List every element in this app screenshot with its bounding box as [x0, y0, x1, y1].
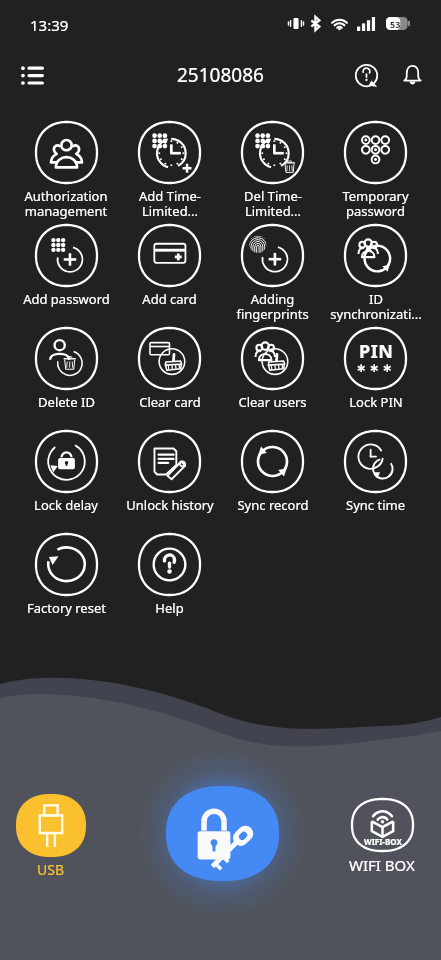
- button[interactable]: Help: [118, 534, 221, 637]
- button[interactable]: Factory reset: [14, 534, 118, 637]
- staticText: Add password: [23, 290, 110, 308]
- button[interactable]: ID synchronizati...: [324, 225, 427, 328]
- staticText: USB: [37, 860, 65, 879]
- button[interactable]: Authorization management: [14, 122, 118, 225]
- button[interactable]: Clear users: [221, 328, 324, 431]
- staticText: Add card: [142, 290, 197, 308]
- button[interactable]: Unlock history: [118, 431, 221, 534]
- button[interactable]: USB: [16, 794, 86, 879]
- staticText: Del Time- Limited...: [244, 187, 302, 220]
- staticText: Sync record: [237, 496, 309, 514]
- staticText: Clear card: [139, 393, 201, 411]
- staticText: Temporary password: [342, 187, 409, 220]
- staticText: 53: [390, 18, 401, 30]
- button[interactable]: PIN: [324, 328, 427, 431]
- staticText: 25108086: [177, 62, 264, 88]
- staticText: Adding fingerprints: [236, 290, 309, 323]
- staticText: Sync time: [346, 496, 405, 514]
- button[interactable]: Notifications: [389, 52, 435, 98]
- staticText: ∗∗∗: [356, 361, 396, 375]
- staticText: Authorization management: [24, 187, 108, 220]
- button[interactable]: WIFI-BOX: [349, 799, 415, 875]
- button[interactable]: Add Time- Limited...: [118, 122, 221, 225]
- button[interactable]: Clear card: [118, 328, 221, 431]
- button[interactable]: Add card: [118, 225, 221, 328]
- button[interactable]: Del Time- Limited...: [221, 122, 324, 225]
- staticText: Help: [155, 599, 184, 617]
- staticText: Clear users: [238, 393, 307, 411]
- button[interactable]: Unlock: [166, 786, 279, 881]
- button[interactable]: Lock delay: [14, 431, 118, 534]
- button[interactable]: Help: [343, 52, 389, 98]
- button[interactable]: Temporary password: [324, 122, 427, 225]
- staticText: Unlock history: [126, 496, 214, 514]
- staticText: Add Time- Limited...: [139, 187, 201, 220]
- staticText: Factory reset: [27, 599, 106, 617]
- staticText: ID synchronizati...: [330, 290, 422, 323]
- staticText: 13:39: [30, 15, 69, 35]
- staticText: WIFI-BOX: [364, 836, 402, 847]
- button[interactable]: Sync record: [221, 431, 324, 534]
- staticText: PIN: [359, 339, 394, 364]
- staticText: WIFI BOX: [349, 855, 415, 875]
- button[interactable]: Delete ID: [14, 328, 118, 431]
- staticText: Lock PIN: [349, 393, 403, 411]
- button[interactable]: Sync time: [324, 431, 427, 534]
- button[interactable]: Menu: [9, 52, 55, 98]
- staticText: Lock delay: [34, 496, 98, 514]
- staticText: Delete ID: [38, 393, 95, 411]
- button[interactable]: Adding fingerprints: [221, 225, 324, 328]
- button[interactable]: Add password: [14, 225, 118, 328]
